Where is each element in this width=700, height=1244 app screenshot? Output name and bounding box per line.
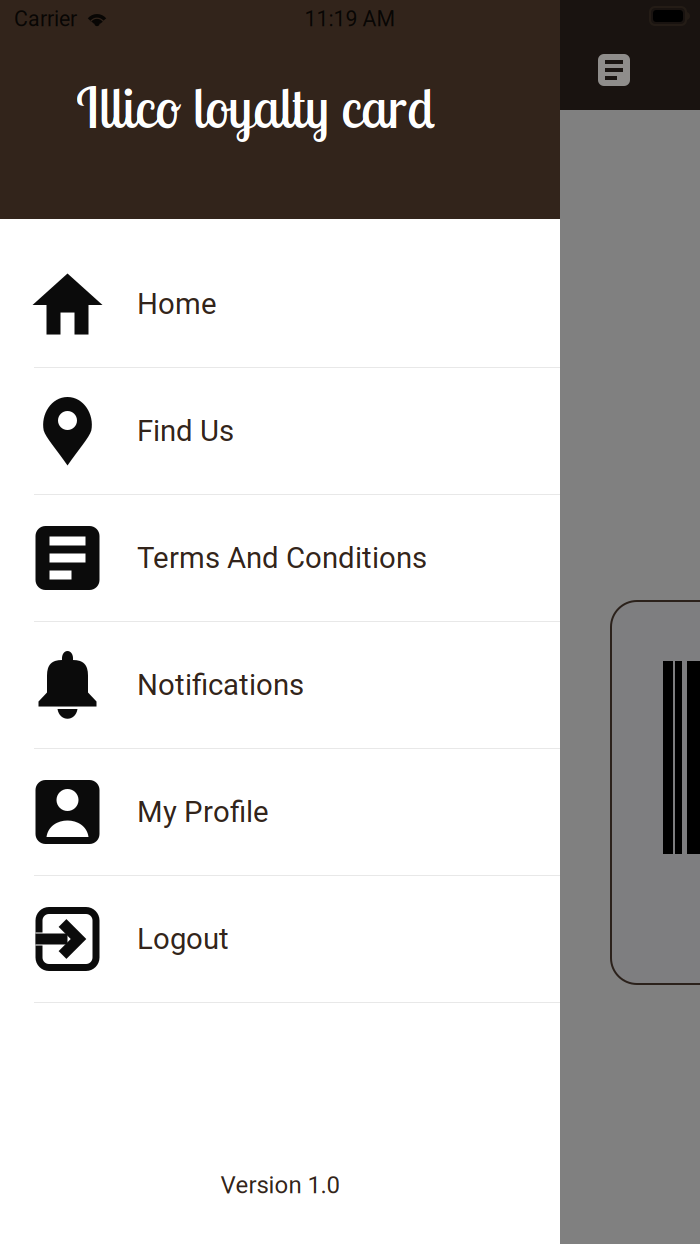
staticText: 11:19 AM <box>304 6 395 31</box>
button[interactable]: Terms And Conditions <box>0 495 560 622</box>
staticText: Carrier <box>14 6 77 31</box>
staticText: Illico loyalty card <box>76 72 435 142</box>
staticText: Terms And Conditions <box>137 541 427 575</box>
button[interactable]: Home <box>0 241 560 368</box>
staticText: Home <box>137 287 217 321</box>
staticText: Version 1.0 <box>220 1171 339 1199</box>
staticText: Notifications <box>137 668 304 702</box>
button[interactable]: Menu <box>588 44 640 96</box>
button[interactable]: My Profile <box>0 749 560 876</box>
staticText: My Profile <box>137 795 269 829</box>
button[interactable]: Find Us <box>0 368 560 495</box>
staticText: Find Us <box>137 414 234 448</box>
staticText: Logout <box>137 922 229 956</box>
button[interactable]: Logout <box>0 876 560 1003</box>
button[interactable]: Notifications <box>0 622 560 749</box>
